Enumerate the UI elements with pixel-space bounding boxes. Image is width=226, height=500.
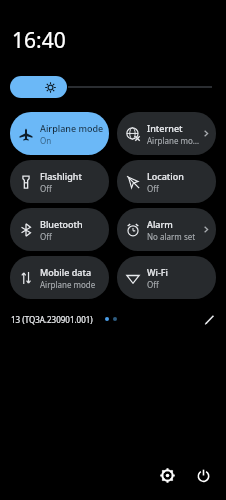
button[interactable]: Internet [117,112,216,155]
staticText: 16:40 [12,26,66,55]
button[interactable]: Wi-Fi [117,256,216,299]
staticText: Off [40,183,52,194]
button[interactable]: Power [188,460,218,490]
staticText: 13 (TQ3A.230901.001) [11,314,93,325]
button[interactable]: Bluetooth [10,208,109,251]
staticText: Airplane mode [40,279,96,290]
staticText: Alarm [147,218,173,230]
staticText: Off [147,279,159,290]
staticText: Off [147,183,159,194]
staticText: Internet [147,122,183,134]
staticText: On [40,135,52,146]
button[interactable]: Airplane mode [10,112,109,155]
button[interactable]: Edit tiles [198,308,220,330]
button[interactable]: Location [117,160,216,203]
staticText: Airplane mode [40,122,104,134]
button[interactable]: Settings [152,460,182,490]
button[interactable]: Mobile data [10,256,109,299]
staticText: Airplane mode [147,135,202,146]
staticText: Location [147,170,184,182]
button[interactable]: Alarm [117,208,216,251]
staticText: Bluetooth [40,218,83,230]
staticText: Wi-Fi [147,266,168,278]
button[interactable]: Flashlight [10,160,109,203]
button[interactable]: Brightness [10,76,212,98]
staticText: Mobile data [40,266,92,278]
staticText: No alarm set [147,231,196,242]
staticText: Flashlight [40,170,82,182]
staticText: Off [40,231,52,242]
